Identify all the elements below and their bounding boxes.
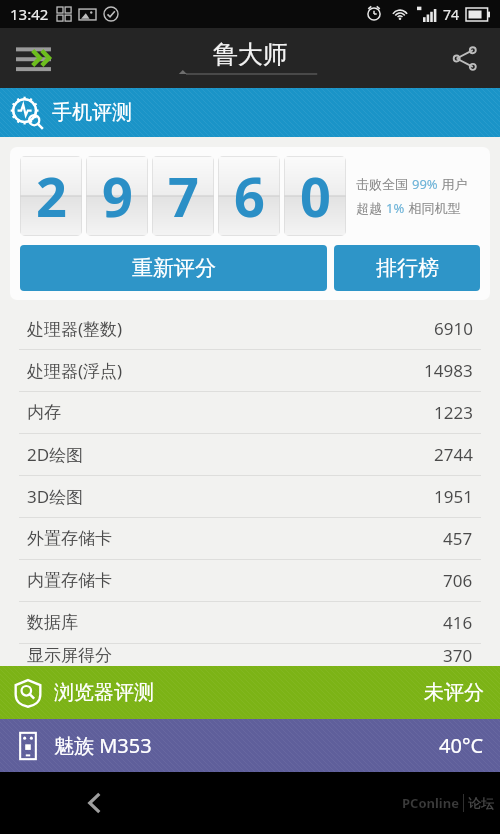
staticText: 1223: [434, 401, 473, 424]
staticText: 超越: [356, 199, 386, 217]
staticText: 40°C: [439, 732, 484, 759]
staticText: 处理器(整数): [27, 317, 123, 340]
button[interactable]: Back: [72, 780, 118, 826]
staticText: 排行榜: [376, 255, 439, 281]
staticText: 9: [102, 159, 133, 233]
staticText: 370: [443, 644, 473, 666]
staticText: 7: [168, 159, 199, 233]
staticText: 未评分: [424, 680, 484, 705]
staticText: 手机评测: [52, 100, 132, 125]
button[interactable]: 显示屏得分: [0, 644, 500, 666]
staticText: 6: [234, 159, 265, 233]
button[interactable]: 3D绘图: [0, 476, 500, 518]
staticText: 重新评分: [132, 255, 216, 281]
button[interactable]: 魅族 M353: [0, 719, 500, 772]
button[interactable]: 2D绘图: [0, 434, 500, 476]
button[interactable]: Menu: [8, 31, 62, 85]
staticText: 3D绘图: [27, 485, 84, 508]
staticText: 2D绘图: [27, 443, 84, 466]
staticText: 706: [443, 569, 473, 592]
staticText: 击败全国: [356, 175, 412, 193]
staticText: 99%: [412, 175, 438, 193]
staticText: 处理器(浮点): [27, 359, 123, 382]
button[interactable]: 重新评分: [20, 245, 327, 291]
staticText: 6910: [434, 317, 473, 340]
staticText: 74: [443, 5, 460, 24]
button[interactable]: 内置存储卡: [0, 560, 500, 602]
button[interactable]: 数据库: [0, 602, 500, 644]
staticText: 内存: [27, 402, 61, 423]
staticText: 显示屏得分: [27, 645, 112, 666]
staticText: 13:42: [10, 4, 49, 24]
staticText: 内置存储卡: [27, 570, 112, 591]
staticText: 相同机型: [405, 199, 461, 217]
staticText: 外置存储卡: [27, 528, 112, 549]
staticText: 457: [443, 527, 473, 550]
button[interactable]: 处理器(整数): [0, 308, 500, 350]
staticText: 1951: [434, 485, 473, 508]
staticText: 浏览器评测: [54, 680, 154, 705]
staticText: 2: [36, 159, 67, 233]
staticText: 416: [443, 611, 473, 634]
staticText: 论坛: [468, 795, 494, 811]
button[interactable]: 浏览器评测: [0, 666, 500, 719]
button[interactable]: 排行榜: [334, 245, 480, 291]
button[interactable]: 内存: [0, 392, 500, 434]
staticText: 14983: [424, 359, 473, 382]
staticText: 鲁大师: [213, 39, 288, 70]
button[interactable]: 处理器(浮点): [0, 350, 500, 392]
staticText: 1%: [386, 199, 405, 217]
staticText: 用户: [438, 175, 468, 193]
staticText: PConline: [402, 794, 459, 812]
button[interactable]: Share: [440, 33, 490, 83]
staticText: 魅族 M353: [54, 732, 152, 759]
button[interactable]: 外置存储卡: [0, 518, 500, 560]
staticText: 数据库: [27, 612, 78, 633]
staticText: 2744: [434, 443, 473, 466]
staticText: 0: [300, 159, 331, 233]
